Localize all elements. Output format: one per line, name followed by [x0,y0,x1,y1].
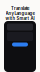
staticText: Any Language [5,11,34,16]
staticText: Translate [11,6,29,11]
staticText: with Smart AI [5,16,34,21]
